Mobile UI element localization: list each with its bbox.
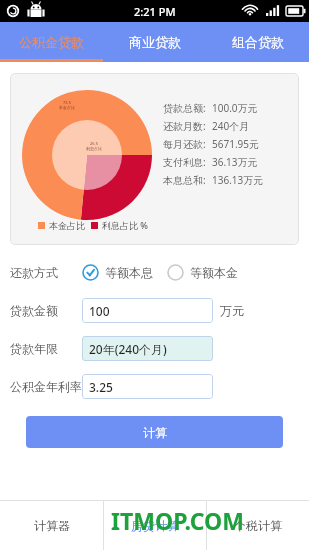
staticText: 万元 <box>220 303 244 318</box>
staticText: 贷款年限 <box>10 341 82 356</box>
staticText: 贷款金额 <box>10 303 82 318</box>
staticText: 公积金年利率 <box>10 379 82 394</box>
button[interactable]: 计算 <box>26 416 283 448</box>
staticText: 26.5 <box>90 141 98 146</box>
button[interactable]: 3.25 <box>82 374 213 399</box>
staticText: 本金占比 <box>49 220 85 231</box>
staticText: 商业贷款 <box>129 34 181 50</box>
button[interactable]: 等额本金 <box>167 264 238 281</box>
button[interactable]: 100 <box>82 298 213 323</box>
button[interactable]: 计算器 <box>0 500 103 550</box>
staticText: 支付利息: <box>163 155 206 169</box>
staticText: 73.5 <box>63 100 71 105</box>
staticText: 公积金贷款 <box>19 34 84 50</box>
button[interactable]: 等额本息 <box>82 264 153 281</box>
staticText: 个税计算 <box>234 518 282 533</box>
staticText: 5671.95元 <box>212 137 259 151</box>
staticText: 计算器 <box>34 518 70 533</box>
staticText: 组合贷款 <box>232 34 284 50</box>
staticText: ITMOP.COM <box>111 505 244 536</box>
staticText: 2:21 PM <box>134 4 176 19</box>
staticText: 等额本息 <box>105 265 153 280</box>
staticText: 房贷计算 <box>131 518 179 533</box>
staticText: 3.25 <box>89 379 113 395</box>
button[interactable]: 公积金贷款 <box>0 22 103 62</box>
staticText: 计算 <box>143 425 167 440</box>
button[interactable]: 商业贷款 <box>103 22 206 62</box>
staticText: 136.13万元 <box>212 173 264 187</box>
staticText: 每月还款: <box>163 137 206 151</box>
staticText: 利息占比 % <box>102 219 149 231</box>
staticText: 贷款总额: <box>163 101 206 115</box>
button[interactable]: 个税计算 <box>207 500 309 550</box>
staticText: 240个月 <box>212 119 250 133</box>
staticText: 还款月数: <box>163 119 206 133</box>
staticText: 36.13万元 <box>212 155 258 169</box>
staticText: 100.0万元 <box>212 101 258 115</box>
staticText: 100 <box>89 303 110 319</box>
staticText: 本息总和: <box>163 173 206 187</box>
button[interactable]: 组合贷款 <box>206 22 309 62</box>
button[interactable]: 房贷计算 <box>104 500 206 550</box>
staticText: 等额本金 <box>190 265 238 280</box>
button[interactable]: 20年(240个月) <box>82 336 213 361</box>
staticText: 还款方式 <box>10 265 82 280</box>
staticText: 20年(240个月) <box>89 341 167 357</box>
staticText: 利息占比 <box>86 146 102 151</box>
staticText: 本金占比 <box>59 105 75 110</box>
